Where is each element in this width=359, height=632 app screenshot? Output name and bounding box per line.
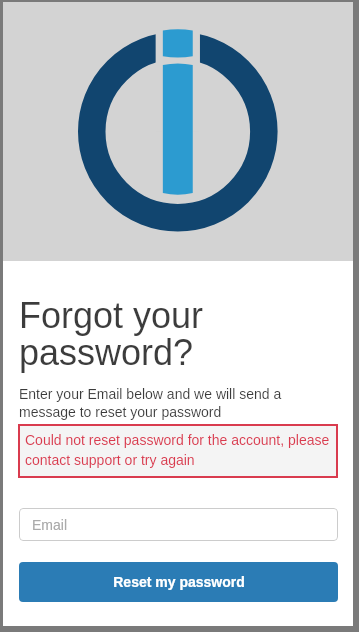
button[interactable]: Email [19, 508, 338, 541]
staticText: Enter your Email below and we will send … [19, 386, 304, 420]
button[interactable]: Reset my password [19, 562, 338, 602]
staticText: Could not reset password for the account… [25, 432, 337, 468]
staticText: Reset my password [113, 574, 245, 590]
staticText: Forgot your password? [19, 295, 204, 372]
staticText: Email [32, 517, 68, 533]
